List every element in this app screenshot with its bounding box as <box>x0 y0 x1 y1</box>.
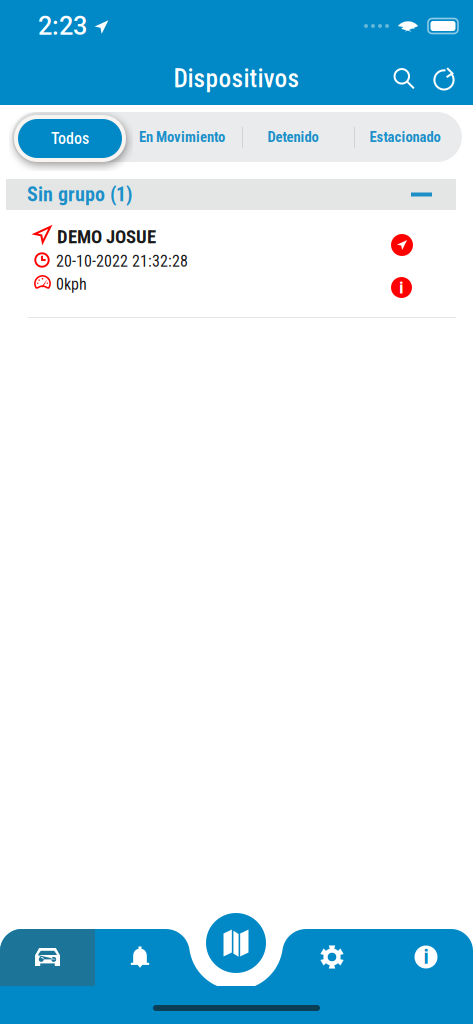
button[interactable]: Detenido <box>238 112 348 162</box>
staticText: 0kph <box>56 275 87 294</box>
staticText: DEMO JOSUE <box>57 226 156 248</box>
button[interactable]: Refresh <box>424 56 464 100</box>
button[interactable]: Map <box>206 913 266 973</box>
button[interactable]: Sin grupo (1) <box>6 179 456 210</box>
staticText: i <box>423 945 428 969</box>
staticText: En Movimiento <box>139 128 225 146</box>
staticText: 2:23 <box>38 11 87 41</box>
staticText: Detenido <box>267 128 318 146</box>
button[interactable]: Settings <box>285 929 379 985</box>
staticText: Sin grupo (1) <box>27 183 132 206</box>
button[interactable]: Alerts <box>95 929 185 985</box>
button[interactable]: Estacionado <box>352 112 458 162</box>
button[interactable]: Search <box>384 56 424 100</box>
button[interactable]: DEMO JOSUE <box>0 210 473 328</box>
staticText: i <box>399 277 404 298</box>
staticText: 20-10-2022 21:32:28 <box>56 252 188 271</box>
button[interactable]: Todos <box>16 117 124 160</box>
staticText: Todos <box>51 129 89 148</box>
button[interactable]: Vehicles <box>0 929 95 985</box>
staticText: Estacionado <box>369 128 440 146</box>
button[interactable]: Info <box>379 929 473 985</box>
button[interactable]: En Movimiento <box>124 112 240 162</box>
staticText: Dispositivos <box>173 64 299 93</box>
